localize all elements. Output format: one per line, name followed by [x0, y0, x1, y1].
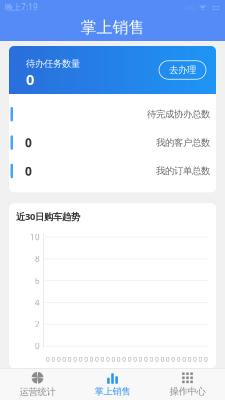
staticText: 我的订单总数	[156, 165, 210, 177]
staticText: 0	[73, 355, 77, 364]
staticText: 0	[84, 355, 88, 364]
staticText: 待完成协办总数	[147, 108, 210, 120]
staticText: 0	[35, 341, 40, 351]
button[interactable]: 0	[9, 128, 216, 157]
staticText: 我的客户总数	[156, 137, 210, 148]
staticText: 0	[26, 70, 34, 89]
staticText: 0	[122, 355, 126, 364]
staticText: 4	[35, 297, 40, 308]
staticText: 0	[90, 355, 94, 364]
staticText: 0	[204, 355, 208, 364]
staticText: 近30日购车趋势	[16, 210, 80, 223]
button[interactable]: 0	[9, 157, 216, 185]
staticText: 0	[144, 355, 148, 364]
staticText: 0	[57, 355, 61, 364]
staticText: 0	[106, 355, 110, 364]
staticText: 0	[25, 163, 32, 179]
staticText: 待办任务数量	[26, 58, 80, 69]
staticText: ◌◌ ᯤ ▭	[185, 2, 220, 12]
staticText: 0	[117, 355, 121, 364]
staticText: 掌上销售	[94, 386, 130, 397]
staticText: 0	[95, 355, 99, 364]
staticText: 0	[160, 355, 164, 364]
staticText: 运营统计	[19, 386, 55, 398]
staticText: 0	[68, 355, 72, 364]
button[interactable]: 去办理	[159, 61, 206, 79]
staticText: 0	[188, 355, 192, 364]
staticText: 0	[155, 355, 159, 364]
staticText: 0	[166, 355, 170, 364]
staticText: 0	[46, 355, 50, 364]
staticText: 0	[171, 355, 175, 364]
staticText: 操作中心	[169, 386, 205, 397]
staticText: 晚上7:19	[5, 2, 38, 12]
button[interactable]: 操作中心	[150, 369, 225, 400]
staticText: 0	[128, 355, 132, 364]
staticText: 0	[149, 355, 153, 364]
button[interactable]: 掌上销售	[75, 369, 150, 400]
staticText: 2	[35, 319, 40, 330]
staticText: 8	[35, 254, 40, 264]
staticText: 0	[62, 355, 66, 364]
staticText: 0	[199, 355, 203, 364]
staticText: 0	[133, 355, 137, 364]
staticText: 0	[182, 355, 186, 364]
staticText: 0	[139, 355, 143, 364]
button[interactable]: 运营统计	[0, 369, 75, 400]
staticText: 0	[100, 355, 104, 364]
staticText: 掌上销售	[80, 18, 144, 37]
staticText: 0	[79, 355, 83, 364]
staticText: 10	[30, 232, 40, 242]
staticText: 0	[51, 355, 55, 364]
staticText: 0	[177, 355, 181, 364]
staticText: 0	[111, 355, 115, 364]
staticText: 0	[25, 135, 32, 150]
staticText: 0	[193, 355, 197, 364]
button[interactable]	[9, 100, 216, 128]
staticText: 6	[35, 275, 40, 286]
staticText: 去办理	[169, 64, 196, 76]
